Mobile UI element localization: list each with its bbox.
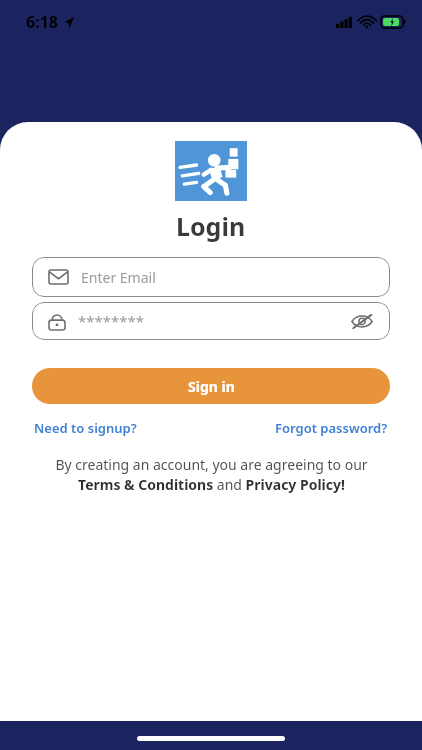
staticText: ********	[78, 311, 145, 331]
staticText: Enter Email	[81, 268, 156, 287]
staticText: Forgot password?	[275, 419, 388, 437]
staticText: Terms & Conditions and Privacy Policy!	[78, 475, 345, 494]
staticText: Sign in	[188, 377, 235, 396]
staticText: Login	[176, 209, 246, 243]
button[interactable]: Enter Email	[32, 257, 390, 297]
button[interactable]: ********	[32, 302, 390, 340]
staticText: Need to signup?	[34, 419, 137, 437]
staticText: 6:18	[26, 11, 58, 33]
button[interactable]: Show password	[349, 308, 375, 334]
button[interactable]: Sign in	[32, 368, 390, 404]
button[interactable]: Forgot password?	[275, 419, 388, 437]
staticText: By creating an account, you are agreeing…	[55, 455, 368, 474]
button[interactable]: Need to signup?	[34, 419, 137, 437]
